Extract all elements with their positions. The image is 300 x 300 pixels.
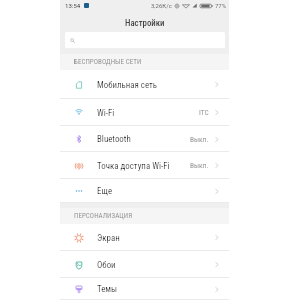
staticText: Обои (97, 260, 116, 270)
staticText: Выкл. (190, 135, 209, 144)
staticText: Мобильная сеть (97, 80, 158, 90)
button[interactable]: Точка доступа Wi-Fi (60, 152, 229, 179)
button[interactable]: Еще (60, 179, 229, 203)
staticText: Экран (97, 233, 120, 243)
staticText: Настройки (125, 18, 165, 28)
staticText: Bluetooth (97, 134, 131, 144)
staticText: ПЕРСОНАЛИЗАЦИЯ (74, 212, 133, 220)
staticText: Wi-Fi (97, 108, 115, 118)
staticText: БЕСПРОВОДНЫЕ СЕТИ (74, 58, 142, 66)
staticText: Темы (97, 284, 118, 294)
staticText: 13:54 (65, 2, 81, 9)
button[interactable]: Экран (60, 224, 229, 251)
button[interactable]: Темы (60, 278, 229, 300)
button[interactable]: Bluetooth (60, 126, 229, 152)
staticText: 77% (215, 2, 227, 9)
staticText: 3,26К/с (151, 2, 172, 9)
staticText: Выкл. (190, 161, 209, 170)
button[interactable]: Wi-Fi (60, 99, 229, 126)
staticText: ITC (199, 108, 209, 117)
button[interactable]: Обои (60, 251, 229, 278)
staticText: Еще (97, 186, 113, 196)
staticText: Точка доступа Wi-Fi (97, 161, 170, 171)
button[interactable]: Мобильная сеть (60, 70, 229, 99)
